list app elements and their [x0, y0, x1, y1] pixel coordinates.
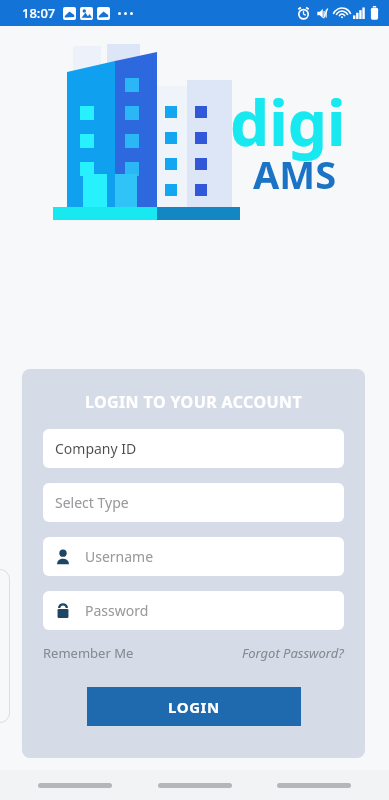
button[interactable]: Navigation	[38, 783, 112, 788]
button[interactable]: Forgot Password?	[242, 642, 344, 664]
button[interactable]: Username	[43, 537, 344, 576]
staticText: Password	[85, 601, 149, 620]
button[interactable]: Password	[43, 591, 344, 630]
staticText: LOGIN TO YOUR ACCOUNT	[43, 391, 344, 413]
staticText: digi	[230, 80, 346, 164]
staticText: Username	[85, 547, 154, 566]
button[interactable]: LOGIN	[87, 687, 301, 726]
button[interactable]: Navigation	[158, 783, 232, 788]
staticText: Company ID	[55, 439, 137, 458]
button[interactable]: Navigation	[277, 783, 351, 788]
staticText: AMS	[253, 148, 337, 200]
button[interactable]: Company ID	[43, 429, 344, 468]
button[interactable]: Select Type	[43, 483, 344, 522]
staticText: Remember Me	[43, 644, 134, 662]
staticText: 18:07	[22, 4, 56, 22]
button[interactable]: Remember Me	[43, 642, 134, 664]
staticText: Select Type	[55, 493, 129, 512]
staticText: LOGIN	[168, 697, 220, 717]
staticText: Forgot Password?	[242, 644, 344, 662]
